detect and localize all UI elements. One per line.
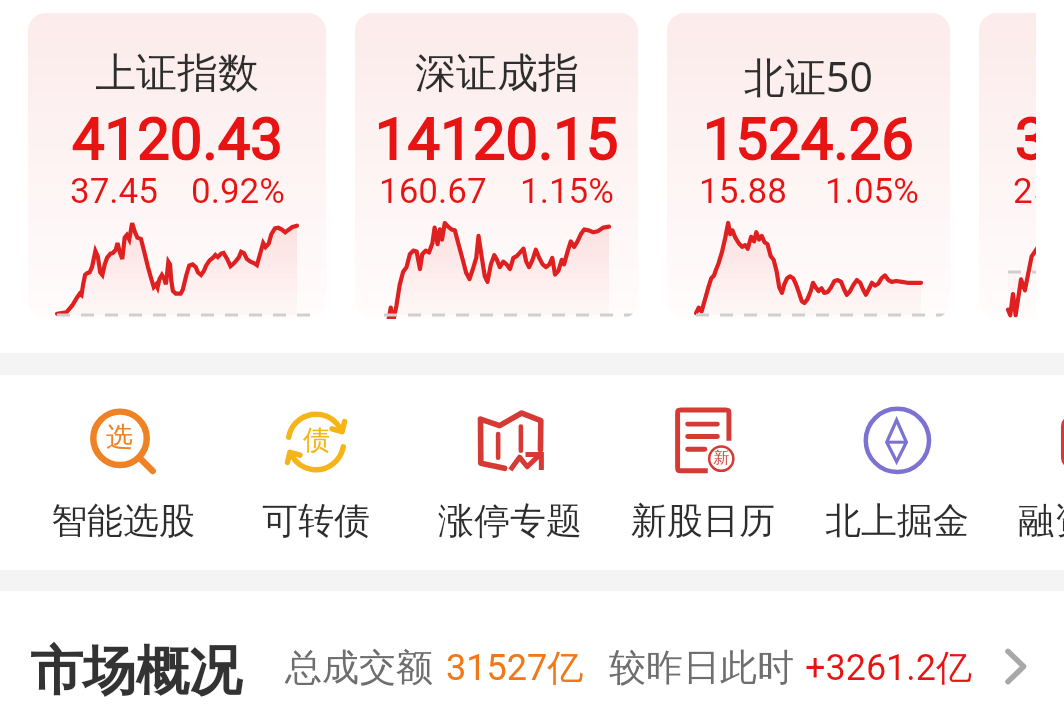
staticText: 总成交额 [285, 644, 433, 691]
staticText: 37.45 [70, 171, 158, 212]
button[interactable]: 北证50 [667, 13, 950, 319]
staticText: 1.05% [825, 171, 919, 212]
button[interactable]: 深证成指 [355, 13, 638, 319]
staticText: +3261.2亿 [805, 645, 973, 690]
staticText: 0.92% [191, 171, 285, 212]
staticText: 较昨日此时 [609, 644, 794, 691]
staticText: 可转债 [262, 498, 370, 543]
staticText: 选 [106, 420, 133, 454]
staticText: 智能选股 [51, 498, 195, 543]
staticText: 北证50 [744, 48, 873, 104]
staticText: 31527亿 [446, 645, 584, 690]
button[interactable]: 市场概况 [0, 591, 1064, 717]
staticText: 债 [303, 423, 330, 457]
staticText: 涨停专题 [438, 498, 582, 543]
staticText: 15.88 [699, 171, 787, 212]
staticText: 1524.26 [703, 105, 914, 173]
button[interactable]: 上证指数 [28, 13, 326, 319]
button[interactable]: 北上掘金 [800, 375, 993, 543]
staticText: 4120.43 [72, 105, 283, 173]
button[interactable]: 新 [606, 375, 799, 543]
staticText: 160.67 [379, 171, 487, 212]
staticText: 市场概况 [30, 638, 242, 705]
button[interactable]: 选 [26, 375, 219, 543]
staticText: 25.44 [1013, 171, 1036, 212]
button[interactable]: 涨停专题 [413, 375, 606, 543]
staticText: 融资融券 [1018, 498, 1064, 543]
staticText: 新 [713, 448, 729, 468]
staticText: 新股日历 [631, 498, 775, 543]
staticText: 深证成指 [415, 48, 579, 100]
staticText: 3012.10 [1015, 105, 1036, 173]
button[interactable]: 科创50 [979, 13, 1036, 319]
staticText: 上证指数 [95, 48, 259, 100]
staticText: 14120.15 [375, 105, 619, 173]
staticText: 1.15% [520, 171, 614, 212]
staticText: 北上掘金 [825, 498, 969, 543]
other: 查看市场概况 [1006, 650, 1025, 683]
button[interactable]: 债 [219, 375, 412, 543]
button[interactable]: 融资融券 [993, 375, 1064, 543]
